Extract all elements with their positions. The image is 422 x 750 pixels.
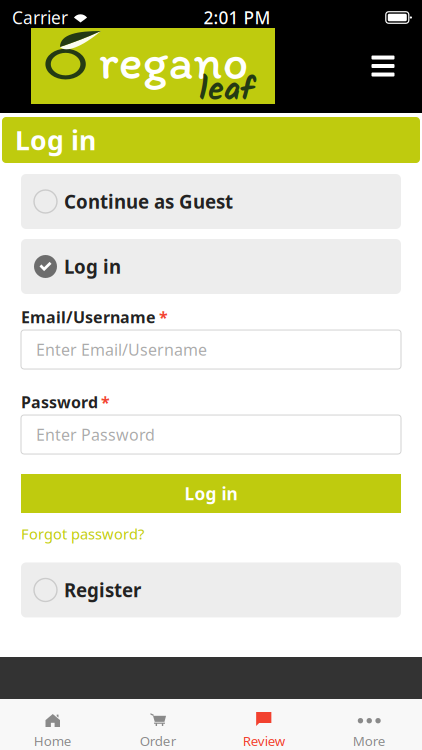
staticText: Email/Username	[21, 306, 156, 328]
staticText: leaf	[199, 65, 254, 116]
button[interactable]: Log in	[21, 239, 401, 294]
staticText: Home	[34, 732, 72, 750]
button[interactable]: More	[316, 699, 422, 750]
staticText: 2:01 PM	[203, 6, 270, 29]
staticText: *	[159, 306, 168, 328]
button[interactable]: Order	[105, 699, 211, 750]
button[interactable]: Menu	[355, 38, 411, 94]
staticText: Review	[243, 732, 285, 750]
staticText: *	[101, 391, 110, 413]
button[interactable]: Enter Password	[21, 415, 401, 454]
staticText: Log in	[64, 254, 121, 279]
button[interactable]: Enter Email/Username	[21, 330, 401, 369]
staticText: regano	[98, 31, 248, 91]
staticText: Password	[21, 391, 98, 413]
staticText: Log in	[15, 122, 96, 158]
staticText: Log in	[184, 482, 237, 505]
staticText: Order	[140, 732, 177, 750]
button[interactable]: Log in	[21, 474, 401, 513]
staticText: Carrier	[12, 6, 68, 29]
staticText: Enter Email/Username	[36, 339, 207, 360]
staticText: Forgot password?	[21, 524, 144, 543]
button[interactable]: Continue as Guest	[21, 174, 401, 229]
button[interactable]: Review	[211, 699, 316, 750]
button[interactable]: Register	[21, 562, 401, 617]
button[interactable]: Forgot password?	[21, 524, 144, 543]
staticText: Continue as Guest	[64, 189, 233, 214]
staticText: Register	[64, 578, 141, 602]
button[interactable]: Home	[0, 699, 105, 750]
staticText: Enter Password	[36, 424, 155, 445]
staticText: More	[353, 732, 386, 750]
